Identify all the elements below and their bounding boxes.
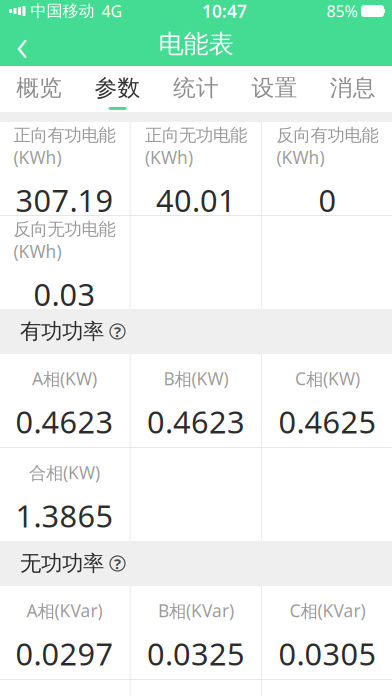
staticText: 307.19 — [15, 180, 113, 220]
staticText: B相(KW) — [163, 367, 228, 390]
staticText: 反向无功电能(KWh) — [13, 218, 115, 263]
staticText: C相(KW) — [295, 367, 360, 390]
button[interactable]: Help about 无功功率 — [110, 556, 125, 571]
button[interactable]: 反向有功电能(KWh) — [262, 122, 392, 215]
staticText: C相(KVar) — [290, 599, 366, 622]
button[interactable]: Back — [0, 22, 44, 66]
staticText: 有功功率 — [20, 318, 104, 345]
staticText: 0.0297 — [15, 633, 113, 674]
staticText: 10:47 — [202, 0, 247, 22]
staticText: ? — [114, 322, 121, 341]
button[interactable]: 消息 — [314, 71, 392, 113]
staticText: 概览 — [16, 74, 62, 102]
staticText: 消息 — [330, 74, 376, 102]
button[interactable]: C相(KW) — [262, 354, 392, 447]
button[interactable]: 参数 — [78, 71, 157, 113]
staticText: 反向有功电能(KWh) — [277, 124, 379, 169]
button[interactable]: 正向有功电能(KWh) — [0, 122, 130, 215]
staticText: 0.4623 — [15, 401, 113, 442]
staticText: 0.4623 — [147, 401, 245, 442]
button[interactable]: C相(KVar) — [262, 586, 392, 679]
staticText: 中国移动 — [30, 1, 94, 21]
button[interactable]: 反向无功电能(KWh) — [0, 216, 130, 309]
button[interactable]: 设置 — [235, 71, 314, 113]
staticText: 0.0325 — [147, 633, 245, 674]
staticText: 设置 — [251, 74, 297, 102]
staticText: 1.3865 — [15, 495, 113, 536]
staticText: 0.0305 — [279, 633, 377, 674]
staticText: 正向有功电能(KWh) — [13, 124, 115, 169]
staticText: A相(KW) — [32, 367, 97, 390]
staticText: 0.03 — [33, 274, 95, 314]
staticText: 40.01 — [156, 180, 236, 220]
button[interactable]: Help about 有功功率 — [110, 324, 125, 339]
button[interactable]: A相(KVar) — [0, 586, 130, 679]
staticText: 正向无功电能(KWh) — [145, 124, 247, 169]
staticText: ? — [114, 554, 121, 573]
staticText: ‹ — [16, 14, 28, 74]
staticText: 0.4625 — [279, 401, 377, 442]
button[interactable]: B相(KVar) — [131, 586, 261, 679]
staticText: A相(KVar) — [26, 599, 102, 622]
button[interactable]: 合相(KW) — [0, 448, 130, 541]
staticText: 无功功率 — [20, 550, 104, 577]
button[interactable]: B相(KW) — [131, 354, 261, 447]
button[interactable]: 概览 — [0, 71, 78, 113]
staticText: 85% — [326, 0, 357, 22]
staticText: 0 — [319, 180, 337, 220]
button[interactable]: 统计 — [157, 71, 235, 113]
button[interactable]: 正向无功电能(KWh) — [131, 122, 261, 215]
button[interactable]: A相(KW) — [0, 354, 130, 447]
staticText: 合相(KW) — [29, 461, 100, 484]
staticText: 统计 — [173, 74, 219, 102]
staticText: B相(KVar) — [158, 599, 234, 622]
staticText: 电能表 — [158, 28, 233, 59]
staticText: 4G — [101, 0, 122, 22]
staticText: 参数 — [95, 74, 141, 102]
